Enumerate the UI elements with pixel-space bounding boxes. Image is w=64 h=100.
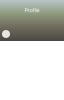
- staticText: Profile: [24, 7, 39, 13]
